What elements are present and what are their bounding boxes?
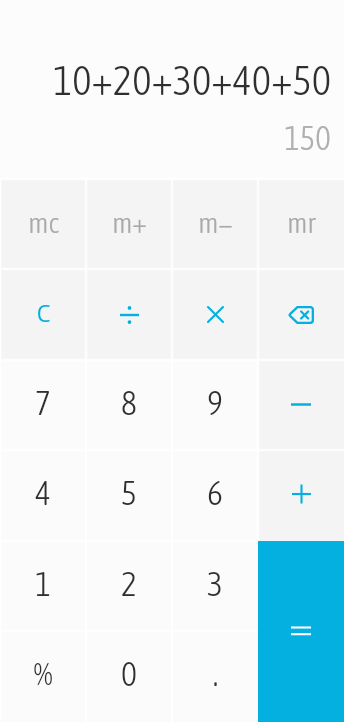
button[interactable]: 0 [86, 631, 172, 722]
staticText: 0 [121, 654, 137, 693]
button[interactable]: Backspace [258, 269, 344, 360]
button[interactable]: mr [258, 179, 344, 269]
staticText: m− [198, 207, 233, 239]
button[interactable]: . [172, 631, 258, 722]
staticText: 4 [35, 473, 51, 512]
staticText: mr [287, 207, 316, 239]
button[interactable]: 2 [86, 541, 172, 631]
staticText: mc [28, 207, 59, 239]
staticText: 5 [121, 473, 137, 512]
staticText: 9 [207, 383, 223, 422]
button[interactable]: Divide [86, 269, 172, 360]
staticText: 8 [121, 383, 137, 422]
button[interactable]: mc [0, 179, 86, 269]
button[interactable]: Plus [258, 450, 344, 541]
staticText: 150 [284, 119, 331, 157]
button[interactable]: 7 [0, 360, 86, 450]
staticText: 2 [121, 564, 137, 603]
staticText: . [212, 654, 219, 693]
button[interactable]: C [0, 269, 86, 360]
button[interactable]: m+ [86, 179, 172, 269]
staticText: 1 [35, 564, 51, 603]
button[interactable]: 8 [86, 360, 172, 450]
staticText: % [33, 656, 53, 692]
button[interactable]: 1 [0, 541, 86, 631]
button[interactable]: 4 [0, 450, 86, 541]
staticText: C [37, 297, 50, 327]
button[interactable]: Multiply [172, 269, 258, 360]
button[interactable]: Equals [258, 541, 344, 722]
button[interactable]: 5 [86, 450, 172, 541]
button[interactable]: 6 [172, 450, 258, 541]
button[interactable]: 9 [172, 360, 258, 450]
button[interactable]: % [0, 631, 86, 722]
staticText: 3 [207, 564, 223, 603]
staticText: m+ [112, 207, 147, 239]
button[interactable]: 3 [172, 541, 258, 631]
staticText: 7 [35, 383, 51, 422]
button[interactable]: Minus [258, 360, 344, 450]
button[interactable]: m− [172, 179, 258, 269]
staticText: 10+20+30+40+50 [53, 57, 331, 104]
staticText: 6 [207, 473, 223, 512]
